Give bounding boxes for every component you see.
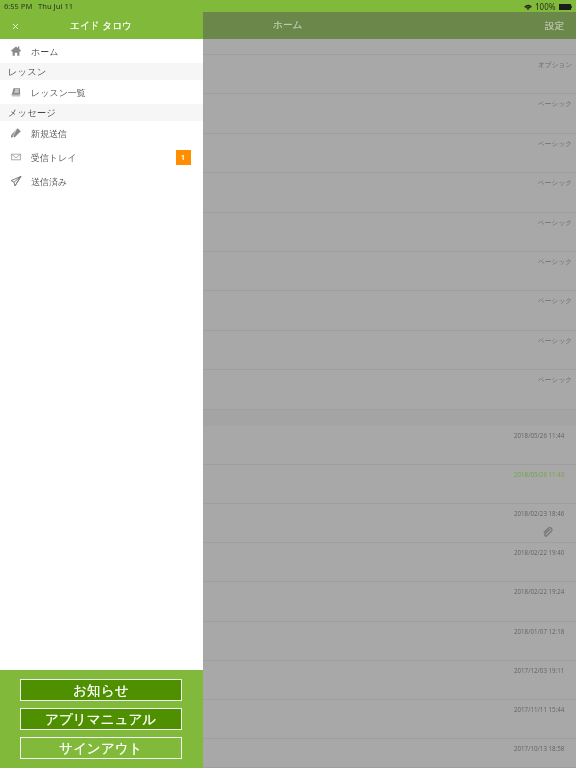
staticText: ホーム (31, 46, 59, 57)
staticText: サインアウト (59, 740, 143, 757)
button[interactable]: オプション (0, 55, 576, 94)
staticText: 1 (181, 153, 186, 163)
button[interactable]: 2018/05/26 11:43 (0, 465, 576, 504)
staticText: 100% (535, 1, 556, 12)
button[interactable]: ベーシック (0, 331, 576, 370)
button[interactable]: 2017/10/13 18:58 (0, 739, 576, 768)
staticText: 2018/02/23 18:46 (514, 509, 565, 517)
staticText: レッスン (8, 66, 47, 78)
staticText: ベーシック (538, 337, 573, 345)
button[interactable]: Close drawer (7, 18, 23, 34)
button[interactable]: アプリマニュアル (20, 708, 182, 730)
button[interactable]: 2018/02/23 18:46 (0, 504, 576, 543)
staticText: レッスン一覧 (31, 87, 86, 98)
staticText: ホーム (273, 19, 303, 31)
button[interactable]: ベーシック (0, 252, 576, 291)
staticText: ベーシック (538, 376, 573, 384)
button[interactable]: お知らせ (20, 679, 182, 701)
staticText: 新規送信 (31, 128, 67, 139)
button[interactable]: ベーシック (0, 173, 576, 213)
staticText: ベーシック (538, 258, 573, 266)
staticText: ベーシック (538, 297, 573, 305)
staticText: 6:55 PM (4, 1, 33, 11)
button[interactable]: 2017/11/11 15:44 (0, 700, 576, 739)
staticText: 2017/10/13 18:58 (514, 744, 565, 752)
staticText: 2017/11/11 15:44 (514, 705, 565, 713)
staticText: 設定 (545, 20, 564, 32)
button[interactable]: ベーシック (0, 370, 576, 410)
button[interactable]: 2018/01/07 12:18 (0, 622, 576, 661)
button[interactable]: 受信トレイ (0, 145, 203, 169)
button[interactable]: 設定 (545, 20, 564, 32)
staticText: 2018/05/26 11:44 (514, 431, 565, 439)
staticText: メッセージ (8, 107, 56, 119)
button[interactable]: ベーシック (0, 94, 576, 134)
staticText: 受信トレイ (31, 152, 77, 163)
staticText: Thu Jul 11 (38, 1, 74, 11)
button[interactable]: 2018/05/26 11:44 (0, 426, 576, 465)
button[interactable]: ベーシック (0, 213, 576, 252)
button[interactable]: 2017/12/03 19:11 (0, 661, 576, 700)
staticText: お知らせ (73, 682, 129, 699)
staticText: ベーシック (538, 100, 573, 108)
staticText: 2018/05/26 11:43 (514, 470, 565, 478)
staticText: ベーシック (538, 219, 573, 227)
button[interactable]: 送信済み (0, 169, 203, 193)
button[interactable]: ベーシック (0, 291, 576, 331)
staticText: 送信済み (31, 176, 68, 187)
staticText: ベーシック (538, 140, 573, 148)
staticText: 2018/02/22 19:40 (514, 548, 565, 556)
button[interactable]: ホーム (0, 39, 203, 63)
staticText: 2018/02/22 19:24 (514, 587, 565, 595)
staticText: アプリマニュアル (45, 711, 157, 728)
button[interactable]: 2018/02/22 19:24 (0, 582, 576, 622)
button[interactable]: サインアウト (20, 737, 182, 759)
staticText: オプション (538, 61, 573, 69)
staticText: 2018/01/07 12:18 (514, 627, 565, 635)
button[interactable]: 新規送信 (0, 121, 203, 145)
button[interactable]: ベーシック (0, 134, 576, 173)
button[interactable]: 2018/02/22 19:40 (0, 543, 576, 582)
staticText: 2017/12/03 19:11 (514, 666, 565, 674)
button[interactable]: レッスン一覧 (0, 80, 203, 104)
staticText: エイド タロウ (70, 19, 133, 32)
staticText: ベーシック (538, 179, 573, 187)
